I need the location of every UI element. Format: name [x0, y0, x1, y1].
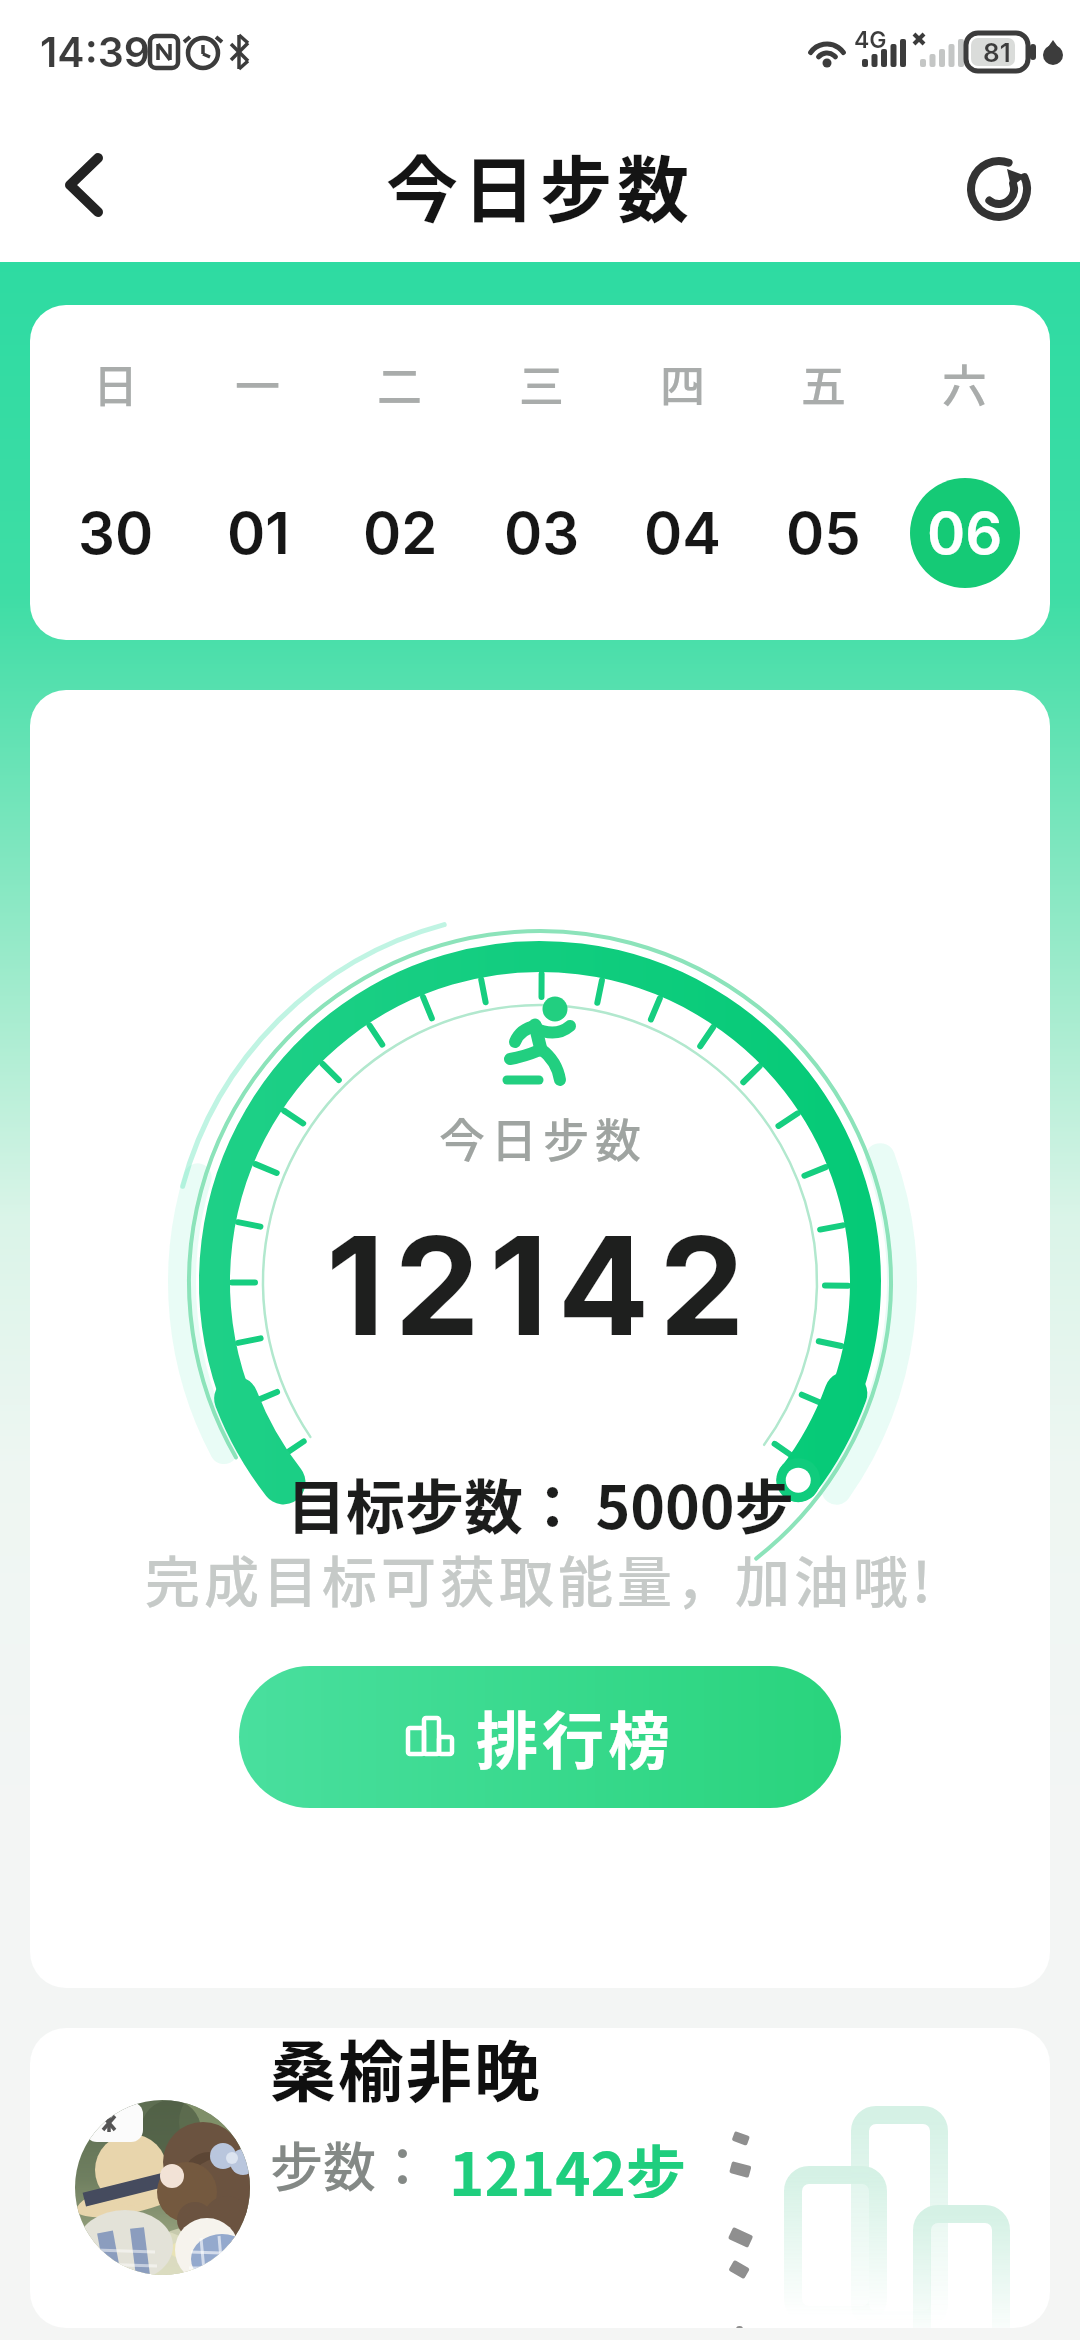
staticText: 12142步 — [449, 2126, 686, 2198]
button[interactable]: 四 — [612, 305, 753, 640]
staticText: 81 — [983, 37, 1011, 68]
staticText: 完成目标可获取能量，加油哦! — [145, 1538, 935, 1618]
staticText: 日 — [93, 351, 139, 416]
staticText: 今日步数 — [436, 1104, 644, 1171]
button[interactable]: 五 — [753, 305, 894, 640]
button[interactable]: 桑榆非晚 — [30, 2028, 1050, 2328]
staticText: 06 — [927, 498, 1003, 568]
staticText: 03 — [504, 498, 580, 568]
button[interactable]: 一 — [187, 305, 329, 640]
staticText: 排行榜 — [476, 1692, 675, 1782]
button[interactable] — [40, 135, 130, 235]
staticText: 步数： — [270, 2126, 429, 2198]
staticText: 01 — [227, 498, 290, 568]
staticText: 六 — [942, 351, 988, 416]
staticText: 05 — [786, 498, 861, 568]
button[interactable]: 六 — [894, 305, 1035, 640]
staticText: 14:39 — [40, 27, 151, 77]
button[interactable]: 排行榜 — [239, 1666, 841, 1808]
button[interactable] — [955, 145, 1045, 231]
staticText: 五 — [801, 351, 847, 416]
staticText: 今日步数 — [386, 132, 695, 236]
staticText: 桑榆非晚 — [270, 2028, 542, 2115]
button[interactable]: 日 — [45, 305, 187, 640]
staticText: 一 — [235, 351, 281, 416]
staticText: 30 — [78, 498, 154, 568]
button[interactable]: 三 — [471, 305, 612, 640]
staticText: 02 — [363, 498, 438, 568]
staticText: 4G — [854, 26, 887, 52]
staticText: 四 — [660, 351, 706, 416]
staticText: 04 — [644, 498, 721, 568]
staticText: 二 — [377, 351, 423, 416]
staticText: 目标步数： 5000步 — [287, 1461, 794, 1546]
staticText: 12142 — [326, 1203, 755, 1343]
button[interactable]: 二 — [329, 305, 471, 640]
staticText: 三 — [519, 351, 565, 416]
